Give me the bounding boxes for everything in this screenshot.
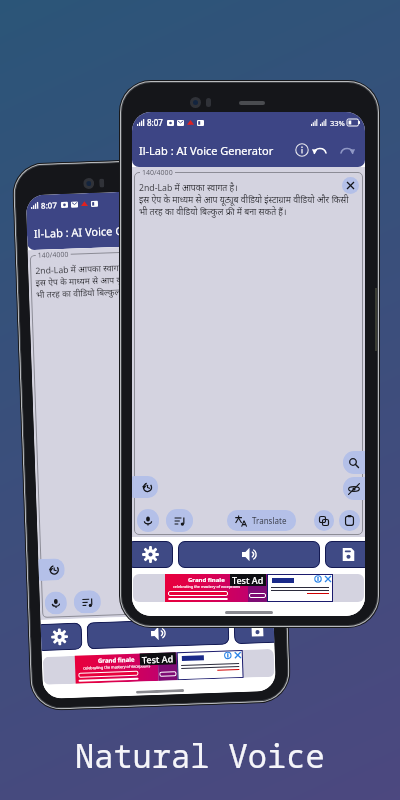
button[interactable]: Redo bbox=[339, 142, 356, 159]
button[interactable]: Playlist bbox=[73, 590, 101, 614]
staticText: 2nd-Lab में आपका स्वागत है। bbox=[139, 182, 238, 194]
button[interactable]: Save bbox=[325, 541, 365, 568]
staticText: 33% bbox=[330, 118, 345, 128]
button[interactable]: Info bbox=[295, 143, 309, 157]
staticText: Il-Lab : AI Voice Generator bbox=[139, 143, 274, 158]
button[interactable]: Paste bbox=[246, 585, 268, 607]
staticText: Translate bbox=[160, 593, 195, 605]
button[interactable]: Settings bbox=[132, 541, 173, 568]
button[interactable]: Microphone bbox=[137, 509, 159, 532]
button[interactable]: Copy bbox=[314, 510, 334, 531]
button[interactable]: Paste bbox=[339, 510, 360, 531]
staticText: Test Ad bbox=[142, 652, 174, 665]
button[interactable]: Search bbox=[343, 451, 365, 474]
staticText: Il-Lab : AI Voice Generator bbox=[34, 221, 169, 241]
button[interactable]: Translate bbox=[134, 587, 204, 611]
staticText: celebrating the mastery of exceptions bbox=[83, 663, 151, 671]
button[interactable]: Save bbox=[233, 616, 274, 644]
staticText: 8:07 bbox=[41, 199, 57, 211]
staticText: इस ऐप के माध्यम से आप यूट्यूब वीडियो इंस… bbox=[35, 269, 256, 300]
button[interactable]: Settings bbox=[41, 623, 82, 651]
button[interactable]: Hide bbox=[249, 552, 272, 576]
button[interactable]: Hide bbox=[343, 477, 365, 500]
button[interactable]: Translate bbox=[227, 510, 296, 531]
staticText: इस ऐप के माध्यम से आप यूट्यूब वीडियो इंस… bbox=[139, 194, 359, 217]
staticText: Grand finale bbox=[98, 656, 135, 665]
button[interactable]: Speak bbox=[178, 541, 320, 568]
button[interactable]: History bbox=[38, 558, 65, 581]
button[interactable]: Clear text bbox=[342, 177, 359, 194]
staticText: 2nd-Lab में आपका स्वागत है। bbox=[35, 261, 134, 277]
staticText: Test Ad bbox=[232, 574, 264, 586]
staticText: 8:07 bbox=[147, 117, 163, 128]
button[interactable]: Search bbox=[248, 526, 271, 550]
button[interactable]: Copy bbox=[221, 586, 242, 608]
button[interactable]: Playlist bbox=[166, 509, 193, 532]
staticText: celebrating the mastery of exceptions bbox=[173, 584, 241, 589]
button[interactable]: Speak bbox=[87, 617, 229, 649]
staticText: Translate bbox=[252, 515, 287, 526]
button[interactable]: Undo bbox=[311, 142, 328, 159]
staticText: 140/4000 bbox=[142, 168, 173, 178]
button[interactable]: History bbox=[132, 476, 158, 498]
staticText: Grand finale bbox=[188, 576, 225, 584]
staticText: 140/4000 bbox=[38, 250, 69, 261]
staticText: Natural Voice bbox=[75, 734, 325, 778]
button[interactable]: Microphone bbox=[44, 591, 67, 615]
staticText: 33% bbox=[224, 194, 239, 204]
